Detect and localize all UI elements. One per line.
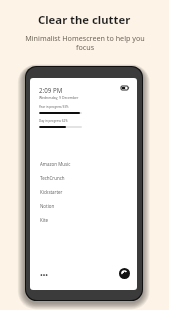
- staticText: Notion: [40, 203, 55, 209]
- staticText: Day in progress 62%: [39, 119, 68, 123]
- button[interactable]: Kite: [40, 213, 98, 227]
- staticText: TechCrunch: [40, 175, 65, 181]
- staticText: Minimalist Homescreen to help you focus: [25, 33, 145, 52]
- staticText: 2:09 PM: [39, 86, 63, 94]
- button[interactable]: Amazon Music: [40, 157, 98, 171]
- button[interactable]: Kickstarter: [40, 185, 98, 199]
- staticText: Kickstarter: [40, 189, 63, 195]
- staticText: Wednesday, 9 December: [39, 95, 79, 100]
- button[interactable]: TechCrunch: [40, 171, 98, 185]
- button[interactable]: Notion: [40, 199, 98, 213]
- button[interactable]: More apps: [38, 269, 50, 281]
- staticText: Clear the clutter: [38, 12, 131, 27]
- staticText: Year in progress 93%: [39, 105, 69, 109]
- staticText: Amazon Music: [40, 161, 71, 167]
- staticText: Kite: [40, 217, 48, 223]
- button[interactable]: Phone: [119, 268, 130, 279]
